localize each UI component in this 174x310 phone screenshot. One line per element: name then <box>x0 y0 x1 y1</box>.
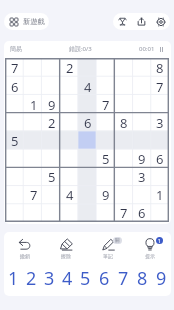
button[interactable]: Share <box>132 13 151 30</box>
button[interactable] <box>97 204 115 222</box>
button[interactable] <box>151 96 169 114</box>
button[interactable]: 1 <box>24 96 43 114</box>
button[interactable] <box>24 58 43 77</box>
button[interactable]: 7 <box>151 77 169 96</box>
button[interactable]: 1 <box>151 186 169 204</box>
button[interactable] <box>5 150 24 168</box>
button[interactable] <box>133 96 151 114</box>
button[interactable] <box>115 96 133 114</box>
button[interactable] <box>133 58 151 77</box>
button[interactable] <box>43 58 61 77</box>
staticText: 6 <box>84 114 92 132</box>
button[interactable] <box>24 168 43 186</box>
button[interactable] <box>24 204 43 222</box>
button[interactable] <box>43 186 61 204</box>
button[interactable]: 6 <box>95 265 114 291</box>
button[interactable]: 3 <box>151 114 169 132</box>
button[interactable] <box>5 168 24 186</box>
button[interactable]: 4 <box>61 186 79 204</box>
button[interactable] <box>133 77 151 96</box>
button[interactable]: 7 <box>115 204 133 222</box>
button[interactable] <box>61 168 79 186</box>
button[interactable]: Settings <box>151 13 170 30</box>
button[interactable] <box>79 150 97 168</box>
button[interactable]: 7 <box>24 186 43 204</box>
button[interactable]: Leaderboard <box>113 13 132 30</box>
button[interactable]: 9 <box>43 96 61 114</box>
button[interactable]: 5 <box>43 168 61 186</box>
button[interactable] <box>115 150 133 168</box>
button[interactable]: 5 <box>76 265 95 291</box>
button[interactable] <box>79 58 97 77</box>
button[interactable]: 擦除 <box>45 232 87 264</box>
button[interactable] <box>97 114 115 132</box>
button[interactable] <box>151 204 169 222</box>
button[interactable]: 8 <box>151 58 169 77</box>
button[interactable] <box>61 132 79 150</box>
button[interactable]: 8 <box>115 114 133 132</box>
button[interactable]: 5 <box>5 132 24 150</box>
button[interactable]: 新遊戲 <box>4 13 49 30</box>
button[interactable] <box>61 204 79 222</box>
button[interactable] <box>115 58 133 77</box>
button[interactable] <box>79 132 97 150</box>
button[interactable]: 3 <box>40 265 58 291</box>
button[interactable]: 6 <box>79 114 97 132</box>
button[interactable] <box>24 114 43 132</box>
button[interactable] <box>97 168 115 186</box>
button[interactable]: 1 <box>129 232 171 264</box>
button[interactable] <box>133 186 151 204</box>
button[interactable]: 6 <box>151 150 169 168</box>
button[interactable] <box>43 204 61 222</box>
button[interactable] <box>97 132 115 150</box>
button[interactable]: 撤銷 <box>4 232 45 264</box>
button[interactable]: 6 <box>5 77 24 96</box>
button[interactable]: Pause <box>157 45 166 54</box>
button[interactable]: 7 <box>5 58 24 77</box>
button[interactable] <box>5 114 24 132</box>
button[interactable]: 7 <box>97 96 115 114</box>
button[interactable]: 5 <box>97 150 115 168</box>
button[interactable] <box>5 96 24 114</box>
button[interactable] <box>43 150 61 168</box>
button[interactable]: 9 <box>133 150 151 168</box>
button[interactable] <box>79 204 97 222</box>
button[interactable]: 9 <box>152 265 171 291</box>
button[interactable]: 8 <box>133 265 152 291</box>
button[interactable]: 關 <box>87 232 129 264</box>
button[interactable] <box>97 77 115 96</box>
button[interactable]: 2 <box>22 265 40 291</box>
button[interactable] <box>133 114 151 132</box>
button[interactable] <box>24 150 43 168</box>
button[interactable] <box>61 96 79 114</box>
button[interactable] <box>43 77 61 96</box>
button[interactable]: 2 <box>61 58 79 77</box>
button[interactable] <box>97 58 115 77</box>
button[interactable] <box>151 132 169 150</box>
button[interactable] <box>61 150 79 168</box>
button[interactable]: 3 <box>133 168 151 186</box>
button[interactable] <box>61 77 79 96</box>
button[interactable] <box>5 186 24 204</box>
button[interactable] <box>115 186 133 204</box>
button[interactable] <box>24 77 43 96</box>
button[interactable] <box>61 114 79 132</box>
button[interactable] <box>115 77 133 96</box>
button[interactable]: 4 <box>58 265 76 291</box>
button[interactable]: 4 <box>79 77 97 96</box>
button[interactable] <box>79 96 97 114</box>
button[interactable] <box>5 204 24 222</box>
button[interactable]: 9 <box>97 186 115 204</box>
button[interactable] <box>151 168 169 186</box>
button[interactable] <box>43 132 61 150</box>
button[interactable]: 6 <box>133 204 151 222</box>
button[interactable]: 7 <box>114 265 133 291</box>
button[interactable]: 1 <box>4 265 22 291</box>
button[interactable] <box>115 168 133 186</box>
button[interactable]: 2 <box>43 114 61 132</box>
